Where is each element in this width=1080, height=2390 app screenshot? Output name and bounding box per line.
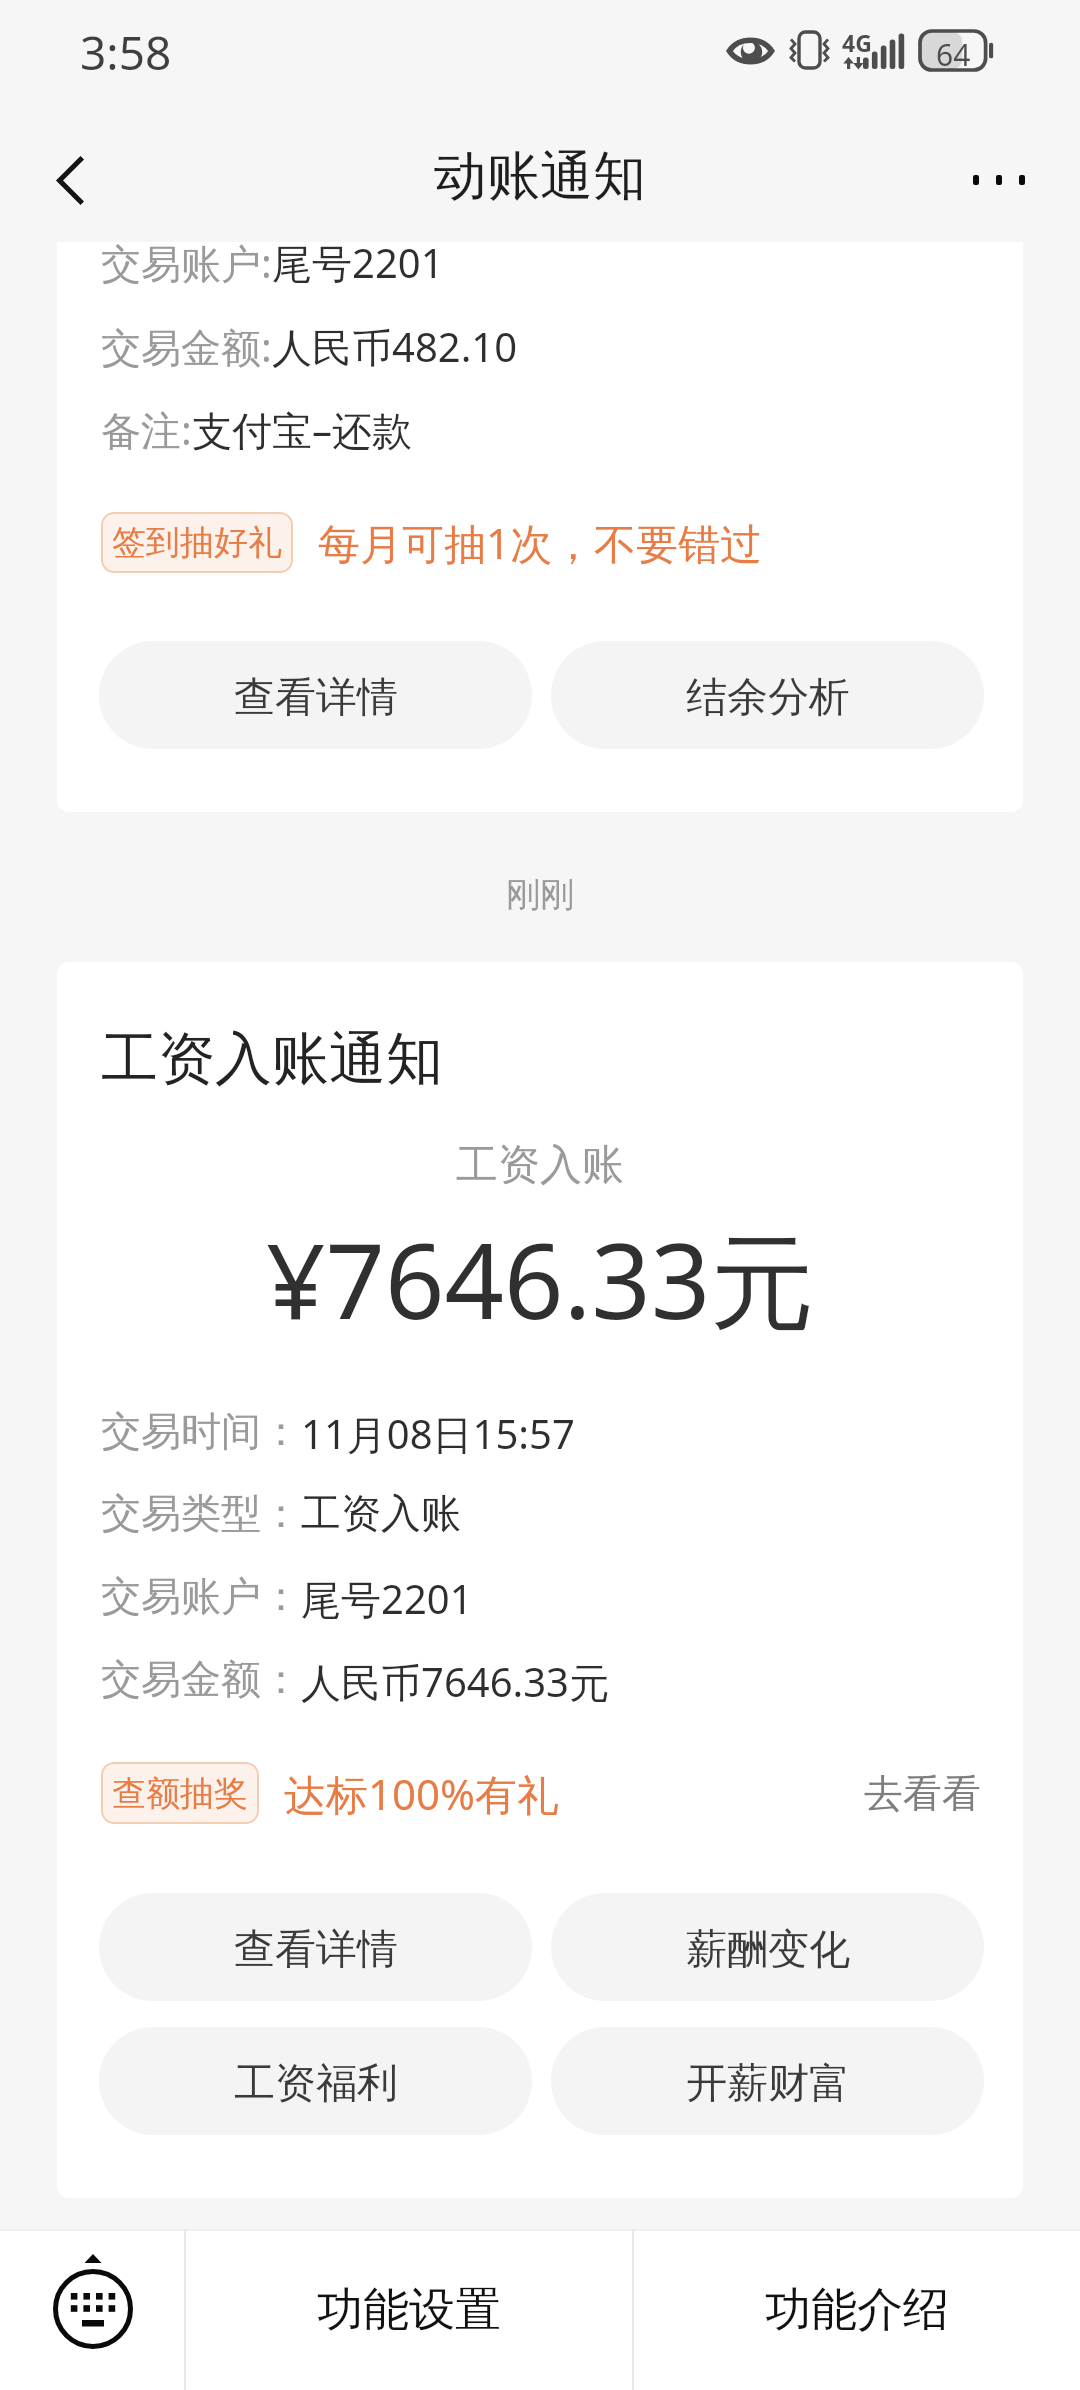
button[interactable]: 查额抽奖 (101, 1762, 259, 1824)
staticText: 功能介绍 (765, 2281, 949, 2339)
button[interactable]: Back (22, 132, 118, 228)
staticText: 查额抽奖 (112, 1772, 248, 1815)
staticText: 结余分析 (686, 672, 850, 724)
staticText: 4G (842, 27, 872, 58)
button[interactable]: 查看详情 (99, 641, 532, 749)
staticText: 工资入账 (301, 1488, 461, 1538)
staticText: 薪酬变化 (686, 1924, 850, 1976)
button[interactable]: 薪酬变化 (551, 1893, 984, 2001)
button[interactable]: Keyboard (0, 2229, 184, 2390)
button[interactable]: 功能介绍 (634, 2229, 1080, 2390)
staticText: 11月08日15:57 (301, 1406, 575, 1456)
staticText: 人民币482.10 (272, 319, 518, 369)
button[interactable]: 查看详情 (99, 1893, 532, 2001)
staticText: 动账通知 (434, 143, 646, 210)
staticText: 功能设置 (317, 2281, 501, 2339)
staticText: 每月可抽1次，不要错过 (318, 514, 763, 571)
staticText: 尾号2201 (301, 1571, 473, 1621)
button[interactable]: 签到抽好礼 (101, 512, 293, 573)
staticText: 64 (936, 34, 971, 67)
staticText: 交易时间： (101, 1406, 301, 1456)
button[interactable]: More options (951, 132, 1047, 228)
staticText: ¥7646.33元 (266, 1208, 815, 1350)
staticText: 达标100%有礼 (284, 1765, 559, 1822)
staticText: 查看详情 (234, 672, 398, 724)
staticText: 交易类型： (101, 1488, 301, 1538)
staticText: 刚刚 (506, 873, 574, 916)
staticText: 尾号2201 (272, 242, 444, 285)
staticText: 交易金额： (101, 1654, 301, 1704)
button[interactable]: 工资福利 (99, 2027, 532, 2135)
staticText: 开薪财富 (686, 2058, 850, 2110)
staticText: 工资入账 (456, 1139, 624, 1192)
staticText: 交易账户: (101, 242, 272, 285)
button[interactable]: 去看看 (864, 1769, 981, 1818)
button[interactable]: 开薪财富 (551, 2027, 984, 2135)
staticText: 备注: (101, 402, 192, 452)
staticText: 工资福利 (234, 2058, 398, 2110)
staticText: 查看详情 (234, 1924, 398, 1976)
staticText: 签到抽好礼 (112, 521, 282, 564)
button[interactable]: 功能设置 (186, 2229, 632, 2390)
staticText: 交易金额: (101, 319, 272, 369)
staticText: 交易账户： (101, 1571, 301, 1621)
button[interactable]: 结余分析 (551, 641, 984, 749)
staticText: 工资入账通知 (101, 1023, 443, 1095)
staticText: 3:58 (80, 21, 172, 84)
staticText: 人民币7646.33元 (301, 1654, 609, 1704)
staticText: 支付宝–还款 (192, 402, 412, 452)
